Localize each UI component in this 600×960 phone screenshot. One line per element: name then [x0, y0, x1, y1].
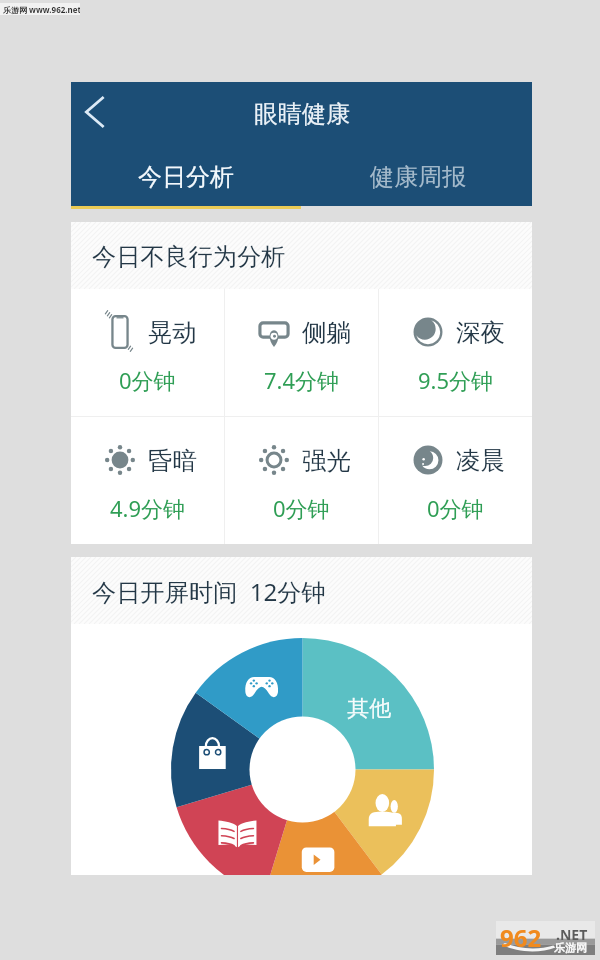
button[interactable]: 晃动 [71, 289, 224, 416]
button[interactable]: 健康周报 [301, 144, 532, 206]
staticText: 眼睛健康 [254, 99, 350, 129]
staticText: 侧躺 [302, 317, 351, 348]
staticText: 0分钟 [119, 365, 176, 395]
staticText: .NET [556, 925, 588, 944]
staticText: 今日不良行为分析 [92, 242, 286, 272]
staticText: 深夜 [456, 317, 505, 348]
button[interactable]: 侧躺 [225, 289, 378, 416]
staticText: 健康周报 [370, 162, 466, 192]
staticText: 7.4分钟 [264, 365, 340, 395]
staticText: 9.5分钟 [418, 365, 494, 395]
staticText: 其他 [347, 695, 391, 723]
button[interactable]: 昏暗 [71, 417, 224, 544]
button[interactable]: 深夜 [379, 289, 532, 416]
button[interactable]: Back [72, 89, 118, 135]
staticText: 962 [500, 921, 542, 954]
staticText: 晃动 [148, 317, 197, 348]
staticText: 4.9分钟 [110, 493, 186, 523]
staticText: 乐游网 www.962.net [3, 4, 80, 15]
staticText: 乐游网 [554, 941, 587, 955]
staticText: 0分钟 [427, 493, 484, 523]
staticText: 凌晨 [456, 445, 505, 476]
button[interactable]: 凌晨 [379, 417, 532, 544]
staticText: 0分钟 [273, 493, 330, 523]
button[interactable]: 今日分析 [71, 144, 301, 206]
staticText: 今日分析 [138, 162, 234, 192]
staticText: 强光 [302, 445, 351, 476]
button[interactable]: 强光 [225, 417, 378, 544]
staticText: 今日开屏时间 12分钟 [92, 575, 326, 608]
staticText: 昏暗 [148, 445, 197, 476]
